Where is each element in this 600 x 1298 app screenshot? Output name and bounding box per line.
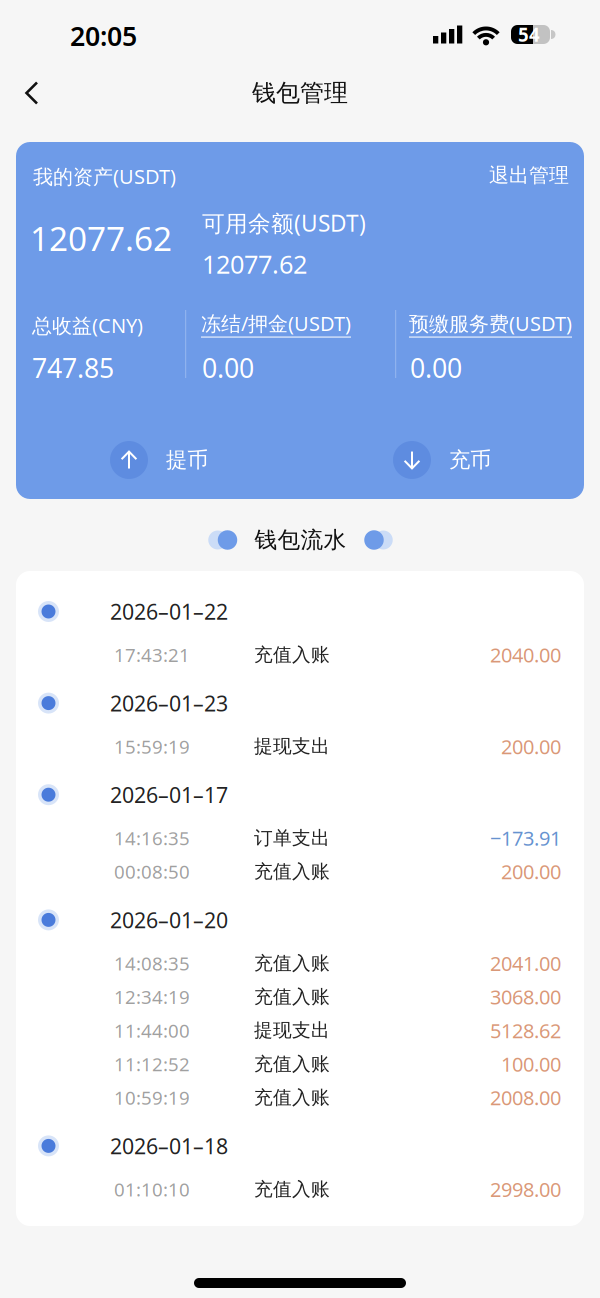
button[interactable]: 退出管理 — [489, 163, 569, 188]
staticText: 我的资产(USDT) — [33, 163, 176, 190]
staticText: 充币 — [449, 447, 491, 473]
staticText: 充值入账 — [254, 860, 330, 883]
staticText: 提现支出 — [254, 1019, 330, 1042]
staticText: 20:05 — [70, 18, 137, 53]
staticText: 0.00 — [202, 350, 254, 385]
staticText: 总收益(CNY) — [32, 312, 143, 339]
staticText: 2008.00 — [490, 1084, 561, 1111]
staticText: 00:08:50 — [114, 859, 190, 884]
staticText: 2998.00 — [490, 1176, 561, 1202]
staticText: 2026–01–22 — [110, 597, 228, 626]
staticText: 2041.00 — [490, 950, 561, 976]
staticText: 2026–01–20 — [110, 906, 228, 934]
staticText: 3068.00 — [490, 983, 561, 1010]
staticText: 充值入账 — [254, 643, 330, 666]
staticText: 15:59:19 — [114, 734, 190, 759]
staticText: 可用余额(USDT) — [202, 208, 366, 238]
staticText: 2026–01–17 — [110, 780, 228, 809]
staticText: 100.00 — [501, 1051, 561, 1077]
staticText: 10:59:19 — [114, 1085, 190, 1110]
staticText: 订单支出 — [254, 826, 330, 849]
staticText: 提币 — [166, 447, 208, 473]
button[interactable]: 返回 — [9, 67, 55, 119]
staticText: 01:10:10 — [114, 1177, 190, 1202]
staticText: 钱包流水 — [254, 526, 346, 554]
staticText: 2040.00 — [490, 641, 561, 668]
staticText: 12077.62 — [202, 247, 307, 281]
staticText: 200.00 — [501, 733, 561, 760]
staticText: 退出管理 — [489, 163, 569, 188]
button[interactable]: 充币 — [393, 441, 491, 479]
staticText: 充值入账 — [254, 985, 330, 1008]
button[interactable]: 提币 — [110, 441, 208, 479]
staticText: 200.00 — [501, 858, 561, 885]
staticText: 2026–01–18 — [110, 1132, 228, 1160]
staticText: 14:16:35 — [114, 826, 190, 850]
staticText: 2026–01–23 — [110, 689, 228, 717]
staticText: 14:08:35 — [114, 951, 190, 976]
staticText: −173.91 — [490, 825, 561, 851]
staticText: 54 — [518, 22, 540, 47]
staticText: 充值入账 — [254, 1052, 330, 1075]
staticText: 12:34:19 — [114, 984, 190, 1009]
staticText: 钱包管理 — [252, 78, 348, 108]
staticText: 充值入账 — [254, 1086, 330, 1109]
staticText: 预缴服务费(USDT) — [409, 310, 572, 337]
staticText: 17:43:21 — [114, 642, 190, 667]
staticText: 0.00 — [410, 350, 462, 385]
staticText: 11:44:00 — [114, 1018, 190, 1043]
staticText: 冻结/押金(USDT) — [201, 310, 351, 337]
staticText: 12077.62 — [30, 216, 172, 260]
staticText: 11:12:52 — [114, 1052, 190, 1076]
staticText: 充值入账 — [254, 1178, 330, 1201]
staticText: 5128.62 — [490, 1017, 561, 1044]
staticText: 充值入账 — [254, 952, 330, 975]
staticText: 提现支出 — [254, 735, 330, 758]
staticText: 747.85 — [32, 350, 114, 385]
